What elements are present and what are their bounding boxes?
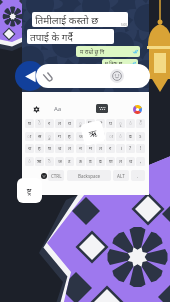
- button[interactable]: ृ: [116, 119, 125, 128]
- button[interactable]: ढ: [96, 157, 105, 166]
- button[interactable]: त: [55, 119, 64, 128]
- button[interactable]: ँ: [136, 119, 145, 128]
- button[interactable]: Backspace: [67, 170, 111, 181]
- button[interactable]: ऋ: [80, 120, 106, 146]
- staticText: म: [89, 145, 92, 152]
- staticText: ढ: [99, 158, 102, 165]
- staticText: प: [109, 120, 112, 127]
- button[interactable]: ॆ: [45, 157, 54, 166]
- button[interactable]: ो: [96, 119, 105, 128]
- button[interactable]: त: [96, 144, 105, 153]
- button[interactable]: ज: [76, 132, 85, 141]
- button[interactable]: ः: [106, 132, 115, 141]
- button[interactable]: ष्ट्र: [17, 178, 42, 203]
- button[interactable]: ि: [86, 119, 95, 128]
- staticText: त: [68, 145, 71, 152]
- button[interactable]: य: [65, 119, 74, 128]
- staticText: तपाई के गर्दै: [30, 30, 73, 44]
- button[interactable]: ं: [25, 157, 34, 166]
- button[interactable]: Settings: [30, 103, 42, 115]
- staticText: ALT: [117, 173, 125, 179]
- button[interactable]: Keyboard layout: [96, 104, 108, 113]
- staticText: ो: [98, 120, 103, 127]
- staticText: ऋ: [37, 158, 42, 165]
- button[interactable]: श: [25, 144, 34, 153]
- button[interactable]: Back: [15, 61, 45, 91]
- button[interactable]: ा: [25, 132, 34, 141]
- button[interactable]: Google: [131, 103, 143, 115]
- staticText: ु: [48, 133, 51, 140]
- button[interactable]: Emoji: [110, 69, 124, 83]
- button[interactable]: म: [86, 144, 95, 153]
- button[interactable]: ड: [86, 157, 95, 166]
- staticText: े: [38, 120, 41, 127]
- button[interactable]: न: [76, 144, 85, 153]
- button[interactable]: तपाई के गर्दै: [27, 29, 114, 44]
- button[interactable]: म ठिक छु: [102, 59, 138, 68]
- button[interactable]: Emoji: [38, 170, 49, 181]
- staticText: ा: [27, 133, 32, 140]
- button[interactable]: ढ: [126, 132, 135, 141]
- button[interactable]: Attach: [36, 64, 150, 88]
- button[interactable]: त: [65, 144, 74, 153]
- button[interactable]: ष: [25, 119, 34, 128]
- staticText: ।: [120, 145, 122, 152]
- button[interactable]: ह: [65, 132, 74, 141]
- staticText: च: [58, 145, 62, 152]
- staticText: र: [48, 120, 51, 127]
- button[interactable]: ALT: [113, 170, 129, 181]
- button[interactable]: र: [45, 119, 54, 128]
- staticText: ?: [129, 145, 132, 152]
- staticText: ट: [68, 158, 71, 165]
- staticText: ग: [58, 133, 61, 140]
- button[interactable]: ु: [45, 132, 54, 141]
- button[interactable]: .: [131, 170, 145, 181]
- staticText: ं: [28, 158, 31, 165]
- button[interactable]: े: [35, 119, 44, 128]
- button[interactable]: स: [35, 132, 44, 141]
- button[interactable]: र: [106, 144, 115, 153]
- button[interactable]: ?: [126, 144, 135, 153]
- button[interactable]: ह: [35, 144, 44, 153]
- button[interactable]: ष: [45, 144, 54, 153]
- button[interactable]: च: [55, 144, 64, 153]
- button[interactable]: ण: [106, 157, 115, 166]
- button[interactable]: ग: [55, 132, 64, 141]
- button[interactable]: ञ: [55, 157, 64, 166]
- button[interactable]: ट: [65, 157, 74, 166]
- button[interactable]: प: [106, 119, 115, 128]
- button[interactable]: Aa: [52, 103, 64, 115]
- staticText: ण: [109, 158, 113, 165]
- button[interactable]: ।: [116, 144, 125, 153]
- button[interactable]: !: [136, 144, 145, 153]
- button[interactable]: ,: [136, 157, 145, 166]
- button[interactable]: Attach: [40, 69, 54, 83]
- staticText: तिमीलाई कस्तो छ: [35, 13, 99, 27]
- button[interactable]: त: [116, 157, 125, 166]
- staticText: ढ: [129, 133, 132, 140]
- button[interactable]: ऽ: [136, 132, 145, 141]
- staticText: ृ: [119, 120, 122, 127]
- button[interactable]: ठ: [76, 157, 85, 166]
- button[interactable]: ं: [126, 119, 135, 128]
- staticText: ं: [129, 120, 132, 127]
- button[interactable]: ु: [76, 119, 85, 128]
- button[interactable]: क: [86, 132, 95, 141]
- staticText: ऋ: [88, 126, 98, 140]
- button[interactable]: म राम्रो छु नि: [76, 46, 140, 57]
- staticText: ऽ: [139, 133, 142, 140]
- staticText: !: [140, 145, 142, 152]
- button[interactable]: तिमीलाई कस्तो छ: [32, 12, 128, 27]
- button[interactable]: ल: [96, 132, 105, 141]
- staticText: क: [89, 133, 93, 140]
- staticText: ष: [48, 145, 51, 152]
- staticText: न: [79, 145, 82, 152]
- button[interactable]: ं: [116, 132, 125, 141]
- staticText: ष: [28, 120, 31, 127]
- staticText: ड: [89, 158, 92, 165]
- button[interactable]: थ: [126, 157, 135, 166]
- staticText: ः: [109, 133, 113, 140]
- button[interactable]: ऋ: [35, 157, 44, 166]
- button[interactable]: CTRL: [48, 170, 64, 181]
